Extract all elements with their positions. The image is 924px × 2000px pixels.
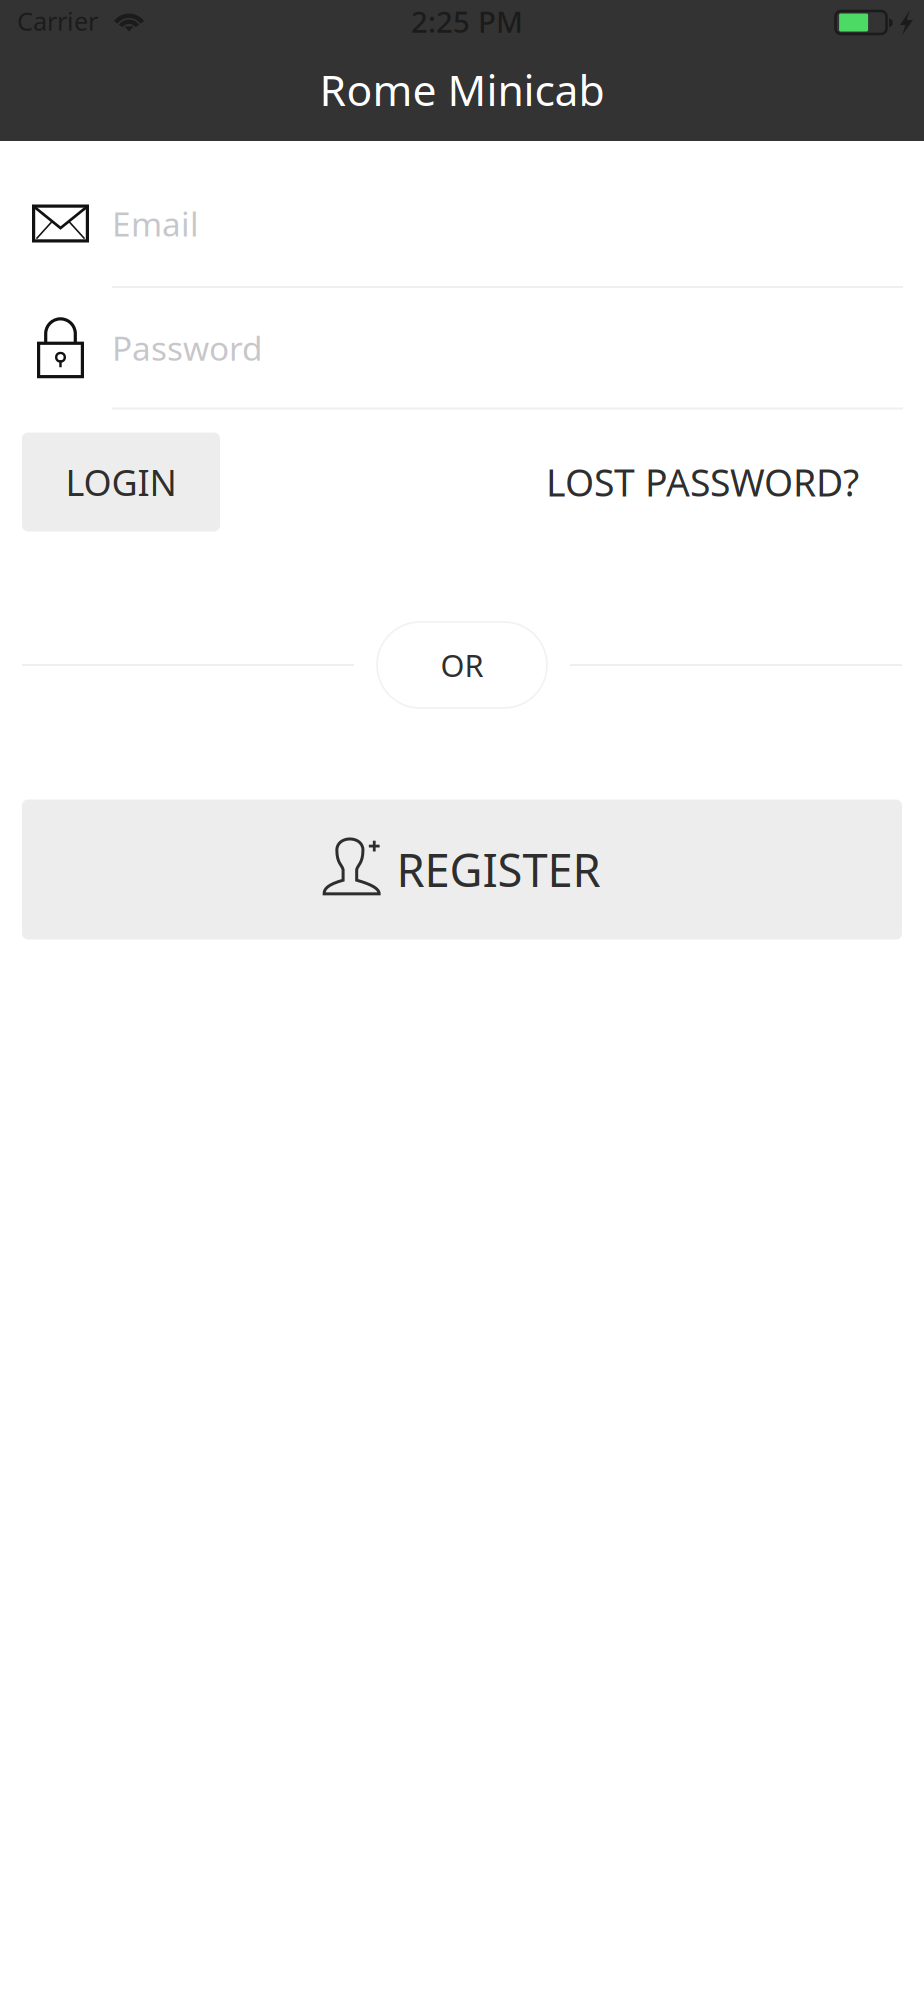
- staticText: REGISTER: [396, 839, 600, 900]
- staticText: Password: [112, 326, 263, 370]
- staticText: Carrier: [17, 4, 98, 38]
- button[interactable]: Email text field: [0, 161, 924, 288]
- staticText: LOST PASSWORD?: [546, 457, 859, 507]
- button[interactable]: LOST PASSWORD?: [503, 432, 902, 531]
- staticText: 2:25 PM: [411, 2, 523, 41]
- button[interactable]: LOGIN: [22, 432, 220, 531]
- staticText: LOGIN: [65, 458, 176, 506]
- staticText: Email: [112, 201, 199, 246]
- button[interactable]: Password text field: [0, 288, 924, 409]
- staticText: OR: [440, 645, 483, 685]
- button[interactable]: REGISTER: [22, 799, 902, 939]
- staticText: Rome Minicab: [319, 61, 604, 118]
